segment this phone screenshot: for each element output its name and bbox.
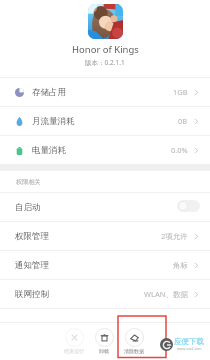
staticText: 卸载 (99, 348, 109, 354)
button[interactable]: 通知管理 (0, 251, 210, 279)
button[interactable]: 月流量消耗 (0, 107, 210, 135)
button[interactable]: 结束运行 (59, 324, 89, 354)
staticText: 结束运行 (64, 348, 84, 354)
button[interactable]: 电量消耗 (0, 136, 210, 164)
staticText: 版本：0.2.1.1 (85, 58, 125, 67)
staticText: 通知管理 (15, 260, 49, 271)
staticText: 联网控制 (15, 289, 49, 300)
button[interactable]: 自启动 (0, 193, 210, 221)
staticText: 应便下载 (174, 337, 204, 346)
staticText: 0B (178, 116, 188, 126)
staticText: Honor of Kings (72, 43, 139, 56)
staticText: 1GB (173, 87, 188, 97)
staticText: 角标 (173, 261, 188, 270)
staticText: 清除数据 (124, 348, 144, 354)
staticText: 存储占用 (32, 87, 66, 98)
button[interactable]: 存储占用 (0, 78, 210, 106)
staticText: www.xxx2.com (177, 346, 202, 351)
button[interactable]: 权限管理 (0, 222, 210, 250)
staticText: 2项允许 (161, 231, 188, 241)
button[interactable]: 联网控制 (0, 280, 210, 308)
staticText: 权限相关 (16, 178, 41, 186)
staticText: 电量消耗 (32, 145, 66, 156)
staticText: 0.0% (171, 145, 188, 155)
staticText: 权限管理 (15, 231, 49, 242)
staticText: 自启动 (15, 202, 41, 213)
staticText: 月流量消耗 (32, 116, 75, 127)
staticText: WLAN、数据 (144, 289, 188, 299)
button[interactable]: 卸载 (89, 324, 119, 354)
button[interactable]: 清除数据 (119, 324, 149, 354)
